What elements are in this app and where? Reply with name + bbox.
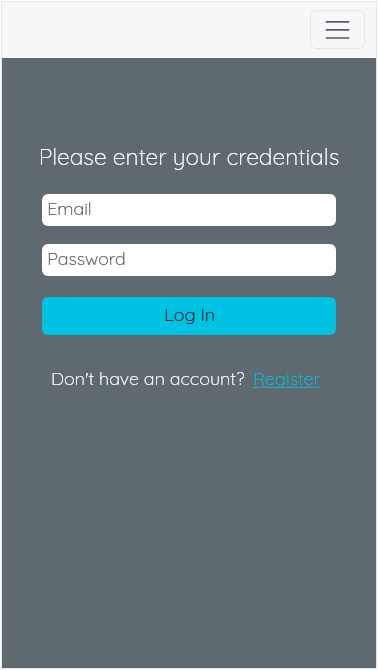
staticText: Email bbox=[47, 197, 92, 219]
button[interactable]: Password bbox=[42, 244, 336, 276]
button[interactable]: Register bbox=[253, 367, 321, 390]
button[interactable]: Toggle navigation bbox=[310, 10, 365, 49]
staticText: Log In bbox=[164, 303, 215, 326]
staticText: Don't have an account? bbox=[51, 367, 245, 390]
staticText: Please enter your credentials bbox=[2, 142, 376, 170]
button[interactable]: Log In bbox=[42, 297, 336, 335]
button[interactable]: Email bbox=[42, 194, 336, 226]
staticText: Password bbox=[47, 247, 126, 269]
